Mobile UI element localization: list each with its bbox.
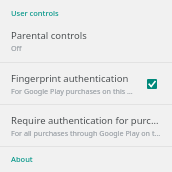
staticText: For Google Play purchases on this device xyxy=(11,86,137,96)
staticText: For all purchases through Google Play on… xyxy=(11,128,161,138)
staticText: Fingerprint authentication xyxy=(11,72,129,85)
staticText: User controls xyxy=(11,8,59,18)
button[interactable]: Fingerprint authentication xyxy=(0,68,172,100)
button[interactable]: Require authentication for purchases xyxy=(0,110,172,142)
staticText: About xyxy=(11,154,33,164)
staticText: Off xyxy=(11,43,22,53)
button[interactable]: Parental controls xyxy=(0,25,172,57)
staticText: Parental controls xyxy=(11,29,87,42)
staticText: Require authentication for purchases xyxy=(11,114,161,127)
button[interactable]: Fingerprint authentication toggle xyxy=(143,75,161,93)
